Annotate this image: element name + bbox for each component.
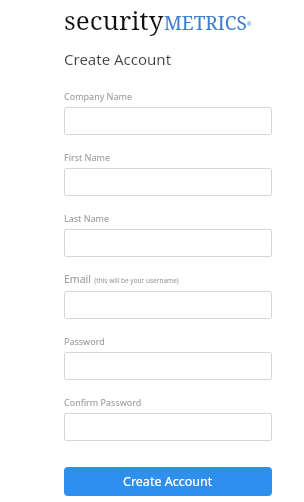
button[interactable]: Create Account xyxy=(64,467,272,496)
staticText: Email (this will be your username) xyxy=(64,272,179,286)
staticText: First Name xyxy=(64,151,110,163)
staticText: METRICS xyxy=(164,10,247,36)
button[interactable] xyxy=(64,291,272,319)
button[interactable] xyxy=(64,168,272,196)
staticText: Create Account xyxy=(123,473,213,490)
button[interactable] xyxy=(64,352,272,380)
staticText: Create Account xyxy=(64,49,172,69)
button[interactable] xyxy=(64,107,272,135)
button[interactable] xyxy=(64,229,272,257)
staticText: Company Name xyxy=(64,90,133,102)
staticText: Last Name xyxy=(64,212,110,224)
staticText: Confirm Password xyxy=(64,396,142,408)
staticText: security xyxy=(64,2,164,37)
button[interactable] xyxy=(64,413,272,441)
staticText: ® xyxy=(247,21,252,28)
staticText: Password xyxy=(64,335,105,347)
